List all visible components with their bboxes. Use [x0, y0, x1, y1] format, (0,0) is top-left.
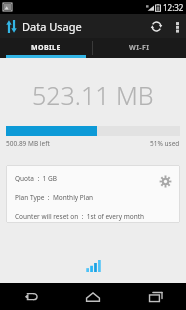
staticText: 500.89 MB left — [6, 139, 50, 148]
button[interactable]: Settings — [156, 172, 174, 190]
staticText: Counter will reset on : 1st of every mon… — [15, 212, 145, 221]
staticText: Data Usage — [22, 19, 82, 34]
button[interactable]: Home — [62, 283, 124, 310]
staticText: Plan Type : Monthly Plan — [15, 193, 94, 202]
button[interactable]: Usage statistics — [84, 259, 102, 273]
staticText: 12:32 — [163, 2, 184, 13]
button[interactable]: MOBILE — [0, 38, 92, 58]
button[interactable]: Refresh — [144, 14, 168, 38]
button[interactable]: WI-FI — [93, 38, 186, 58]
button[interactable]: Recent apps — [124, 283, 186, 310]
staticText: MOBILE — [31, 43, 61, 53]
staticText: WI-FI — [129, 43, 150, 53]
staticText: 523.11 MB — [32, 78, 154, 112]
staticText: Quota : 1 GB — [15, 174, 57, 183]
button[interactable]: More options — [168, 14, 186, 38]
button[interactable]: Back — [0, 283, 62, 310]
staticText: 51% used — [150, 139, 180, 148]
